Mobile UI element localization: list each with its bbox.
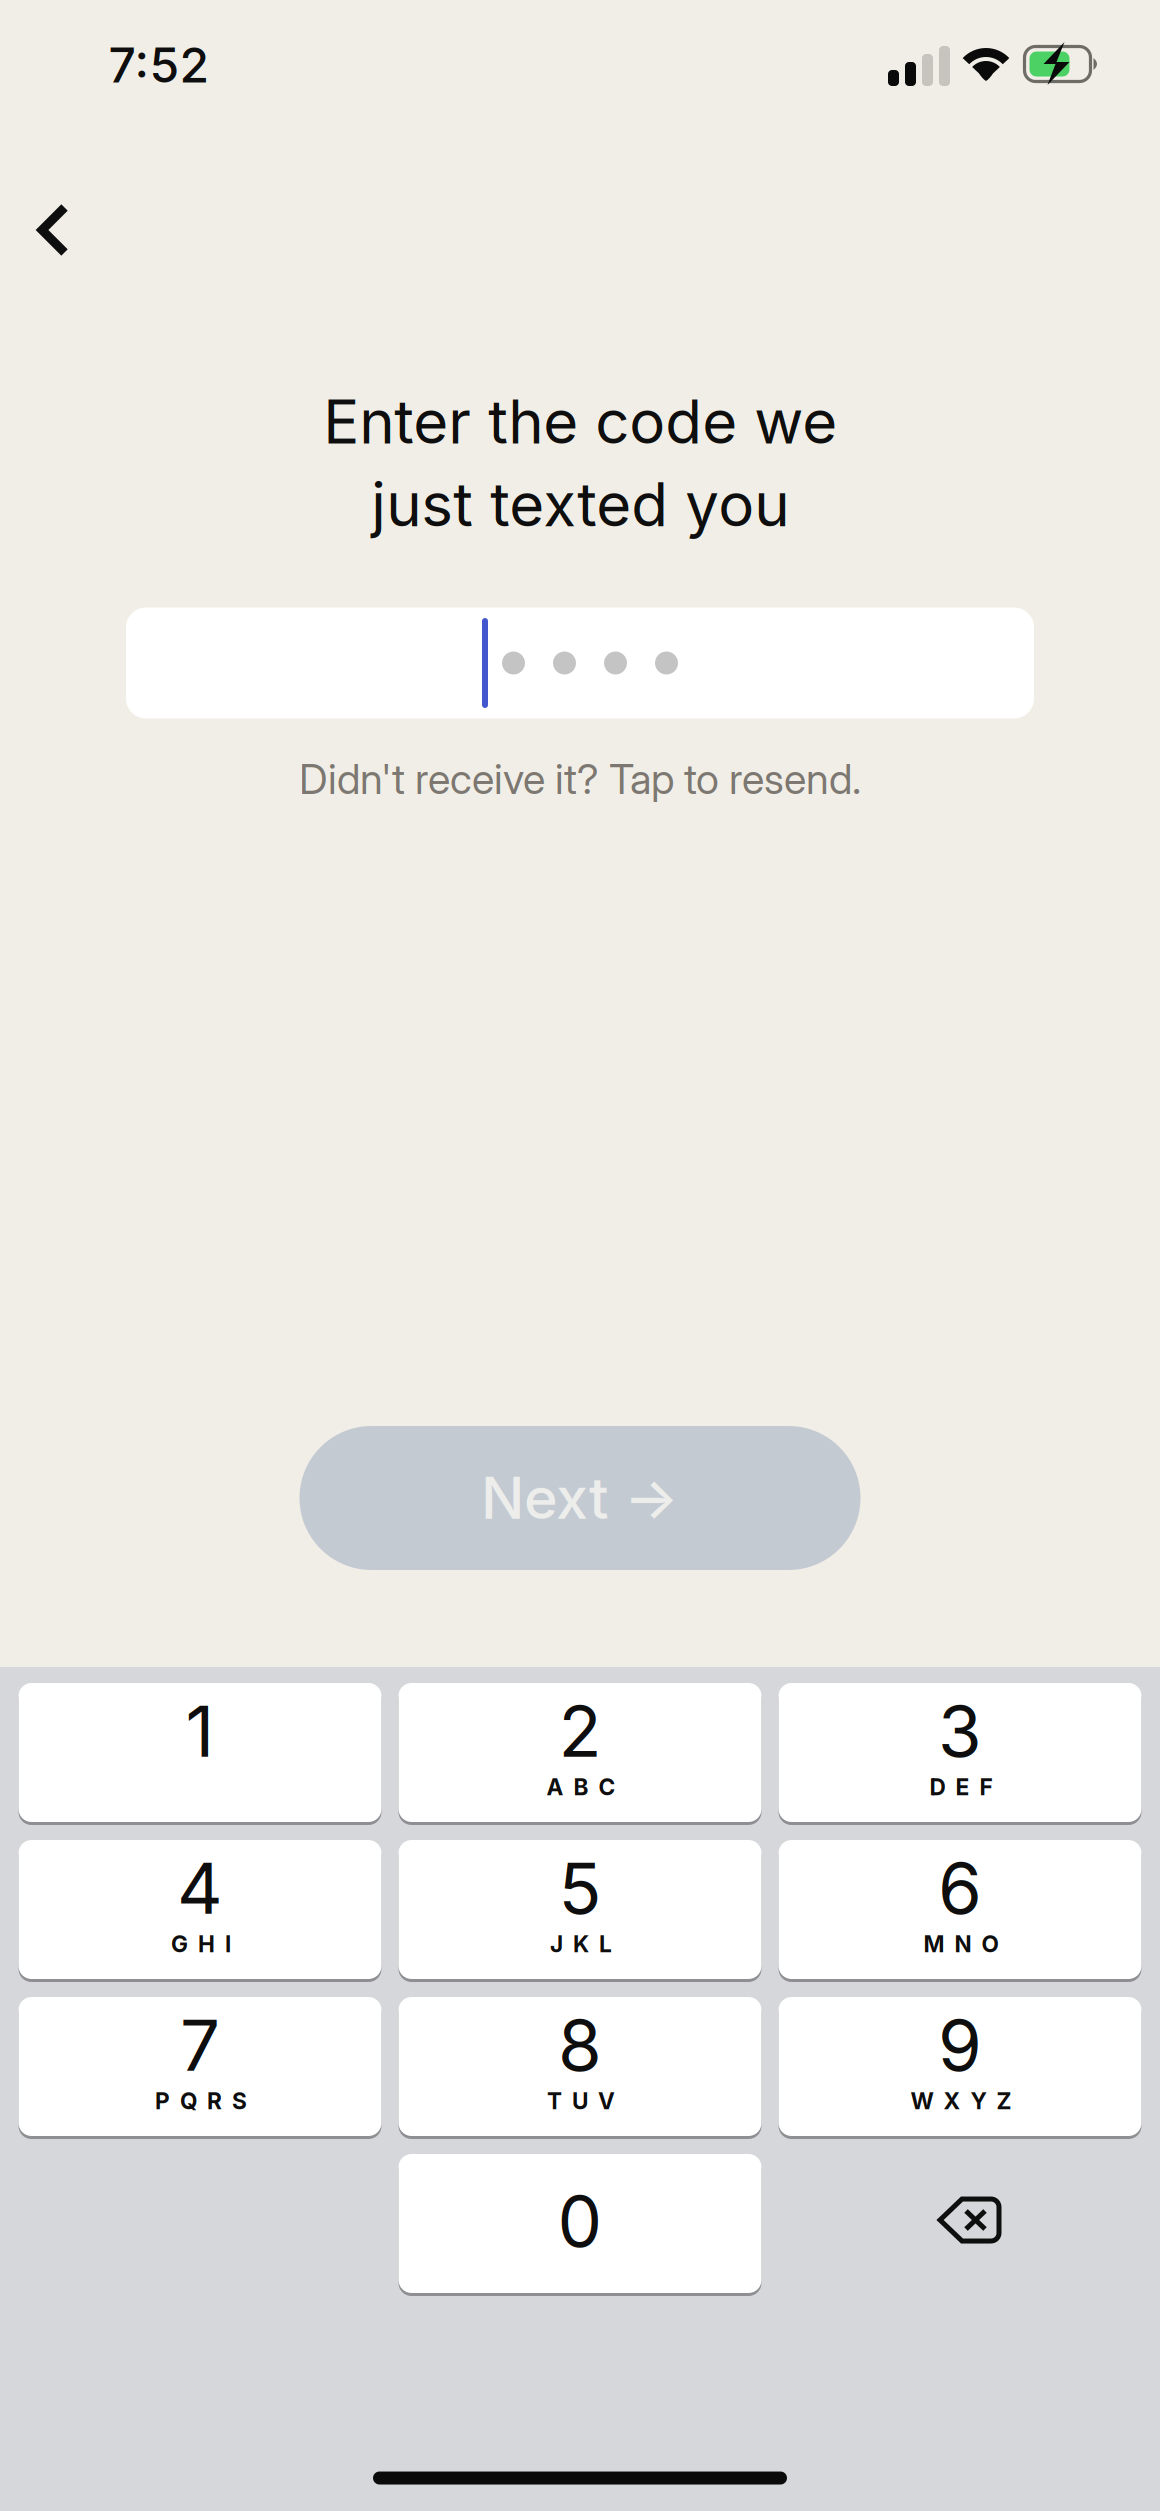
staticText: DEF: [929, 1773, 992, 1801]
button[interactable]: 4: [18, 1840, 381, 1979]
staticText: 3: [938, 1688, 982, 1774]
staticText: 1: [185, 1688, 214, 1774]
staticText: 7:52: [108, 36, 209, 94]
staticText: 6: [938, 1845, 982, 1931]
button[interactable]: 1: [18, 1683, 381, 1822]
button[interactable]: 9: [778, 1997, 1141, 2136]
staticText: 8: [558, 2002, 602, 2088]
staticText: GHI: [171, 1930, 231, 1958]
staticText: TUV: [547, 2087, 615, 2115]
staticText: ABC: [546, 1773, 615, 1801]
button[interactable]: 8: [398, 1997, 761, 2136]
staticText: MNO: [923, 1930, 998, 1958]
staticText: 2: [558, 1688, 601, 1774]
staticText: 9: [938, 2002, 982, 2088]
staticText: 4: [177, 1845, 223, 1931]
button[interactable]: 7: [18, 1997, 381, 2136]
button[interactable]: 3: [778, 1683, 1141, 1822]
staticText: WXYZ: [910, 2087, 1011, 2115]
button[interactable]: Didn't receive it? Tap to resend.: [299, 744, 861, 814]
button[interactable]: [126, 607, 1034, 718]
button[interactable]: 0: [398, 2154, 761, 2293]
button[interactable]: 6: [778, 1840, 1141, 1979]
staticText: 7: [180, 2002, 220, 2088]
staticText: Enter the code we just texted you: [323, 385, 837, 541]
button[interactable]: 2: [398, 1683, 761, 1822]
staticText: 0: [557, 2178, 602, 2264]
staticText: PQRS: [155, 2087, 247, 2115]
button[interactable]: Back: [0, 175, 110, 285]
button[interactable]: 5: [398, 1840, 761, 1979]
staticText: JKL: [550, 1930, 612, 1958]
staticText: 5: [558, 1845, 601, 1931]
button[interactable]: Delete: [778, 2154, 1141, 2293]
staticText: Didn't receive it? Tap to resend.: [299, 754, 861, 804]
button[interactable]: Next →: [299, 1426, 860, 1570]
staticText: Next →: [481, 1463, 679, 1533]
